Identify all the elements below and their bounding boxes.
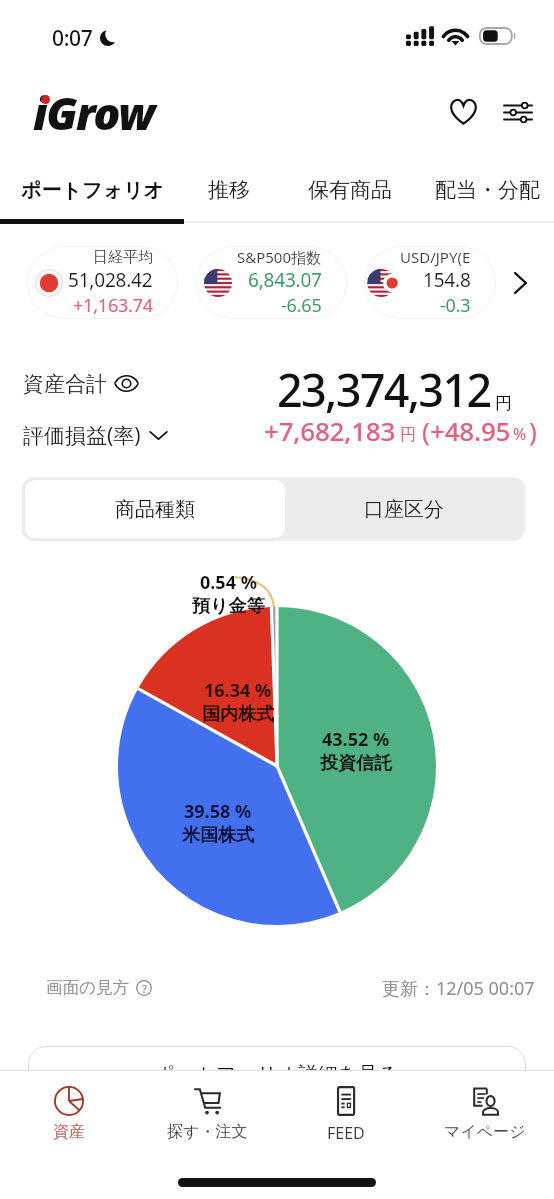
button[interactable]: 保有商品 — [280, 160, 420, 220]
button[interactable]: Toggle balance visibility — [113, 370, 140, 397]
staticText: 6,843.07 — [248, 267, 322, 293]
staticText: 資産 — [53, 1122, 85, 1142]
staticText: 円 — [400, 425, 416, 445]
staticText: 16.34 % — [204, 678, 272, 703]
staticText: 23,374,312 — [277, 359, 491, 420]
staticText: 保有商品 — [308, 177, 392, 203]
staticText: 商品種類 — [115, 497, 195, 522]
staticText: +7,682,183 — [264, 413, 396, 448]
staticText: 円 — [495, 393, 512, 414]
button[interactable]: Settings — [493, 87, 543, 137]
staticText: ポートフォリオ — [21, 178, 164, 203]
button[interactable]: 日経平均 — [27, 246, 178, 319]
button[interactable]: マイページ — [415, 1080, 554, 1160]
staticText: 更新：12/05 00:07 — [382, 976, 535, 1001]
button[interactable]: 探す・注文 — [138, 1080, 276, 1160]
staticText: マイページ — [444, 1122, 526, 1142]
button[interactable]: USD/JPY(E — [364, 246, 496, 319]
staticText: USD/JPY(E — [400, 247, 471, 267]
staticText: 39.58 % — [184, 799, 252, 824]
staticText: 推移 — [208, 177, 250, 203]
staticText: 探す・注文 — [167, 1122, 248, 1142]
button[interactable]: ポートフォリオ詳細を見る — [28, 1046, 526, 1166]
staticText: 国内株式 — [202, 703, 274, 726]
staticText: % — [513, 423, 527, 445]
staticText: 画面の見方 — [46, 977, 129, 998]
staticText: FEED — [327, 1122, 365, 1144]
staticText: 米国株式 — [182, 824, 254, 847]
button[interactable]: FEED — [276, 1080, 415, 1160]
staticText: S&P500指数 — [237, 247, 322, 267]
staticText: ポートフォリオ詳細を見る — [155, 1062, 399, 1087]
button[interactable]: 口座区分 — [285, 480, 522, 538]
staticText: -0.3 — [440, 293, 471, 318]
button[interactable]: 配当・分配 — [420, 160, 554, 220]
button[interactable]: Favorites — [438, 86, 488, 136]
staticText: 配当・分配 — [435, 177, 540, 203]
button[interactable]: More markets — [500, 263, 540, 303]
staticText: 51,028.42 — [68, 267, 153, 293]
button[interactable]: 商品種類 — [25, 480, 285, 538]
staticText: 0:07 — [52, 24, 93, 53]
button[interactable]: 画面の見方 — [46, 977, 152, 998]
staticText: 口座区分 — [364, 497, 444, 522]
staticText: +1,163.74 — [73, 293, 153, 318]
staticText: +48.95 — [430, 413, 511, 448]
staticText: iGrow — [33, 82, 154, 143]
staticText: 評価損益(率) — [23, 421, 141, 450]
button[interactable]: ポートフォリオ — [0, 160, 184, 220]
staticText: 預り金等 — [192, 595, 265, 618]
button[interactable]: S&P500指数 — [196, 246, 347, 319]
staticText: ) — [529, 413, 537, 448]
staticText: ( — [422, 413, 430, 448]
button[interactable]: 資産 — [0, 1080, 138, 1160]
button[interactable]: 推移 — [184, 160, 274, 220]
staticText: 0.54 % — [200, 570, 257, 595]
staticText: -6.65 — [281, 293, 322, 318]
staticText: 43.52 % — [322, 727, 390, 752]
staticText: 日経平均 — [93, 248, 153, 267]
staticText: ? — [142, 981, 147, 996]
staticText: 投資信託 — [320, 752, 392, 775]
staticText: 資産合計 — [23, 371, 107, 397]
staticText: 154.8 — [423, 267, 471, 293]
